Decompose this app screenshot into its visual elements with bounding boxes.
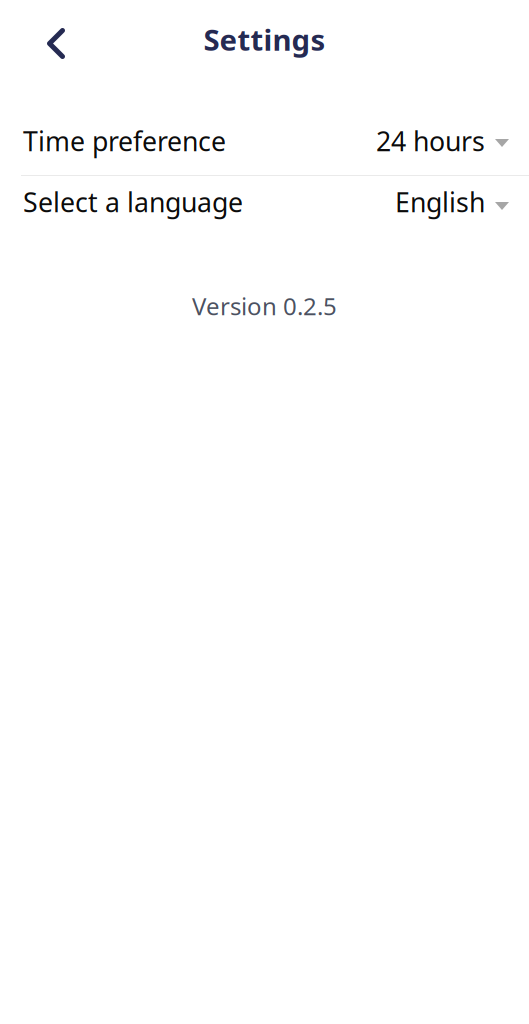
staticText: 24 hours	[376, 123, 485, 159]
button[interactable]: Time preference	[0, 110, 529, 175]
staticText: Time preference	[23, 123, 226, 159]
staticText: Version 0.2.5	[192, 290, 337, 322]
button[interactable]: Select a language	[0, 176, 529, 237]
staticText: English	[395, 184, 485, 220]
button[interactable]: Back	[0, 14, 91, 73]
staticText: Select a language	[23, 184, 243, 220]
staticText: Settings	[203, 20, 325, 59]
